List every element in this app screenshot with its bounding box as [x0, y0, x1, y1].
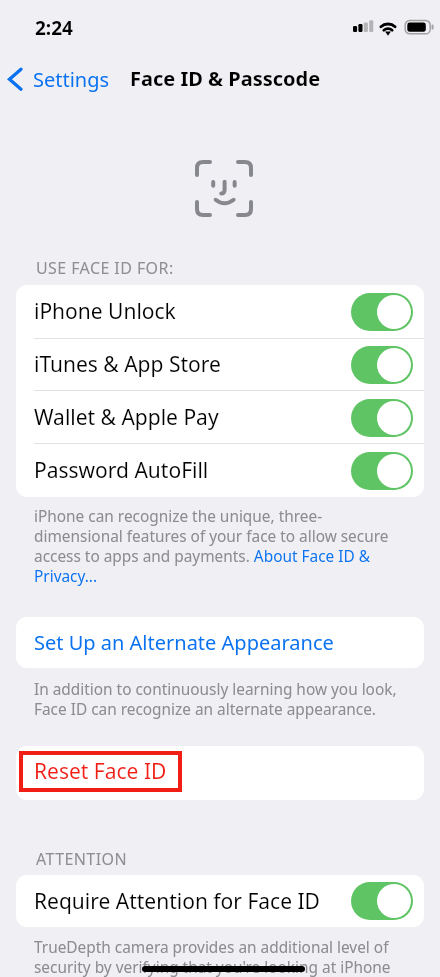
staticText: TrueDepth camera provides an additional …: [34, 938, 408, 977]
button[interactable]: Toggle on: [351, 399, 413, 437]
staticText: ATTENTION: [36, 848, 128, 870]
staticText: In addition to continuously learning how…: [34, 680, 408, 720]
button[interactable]: Toggle on: [351, 882, 413, 920]
staticText: iPhone Unlock: [34, 297, 176, 326]
button[interactable]: Wallet & Apple Pay: [16, 391, 424, 444]
button[interactable]: iPhone Unlock: [16, 285, 424, 338]
staticText: Settings: [33, 66, 110, 93]
staticText: Password AutoFill: [34, 456, 209, 485]
staticText: Wallet & Apple Pay: [34, 403, 219, 432]
button[interactable]: Set Up an Alternate Appearance: [16, 617, 424, 668]
button[interactable]: Password AutoFill: [16, 444, 424, 497]
staticText: Face ID & Passcode: [130, 65, 321, 92]
button[interactable]: Require Attention for Face ID: [16, 875, 424, 927]
staticText: 2:24: [35, 15, 73, 41]
button[interactable]: Back to Settings: [2, 62, 114, 96]
button[interactable]: Toggle on: [351, 346, 413, 384]
staticText: USE FACE ID FOR:: [36, 257, 174, 279]
button[interactable]: Toggle on: [351, 293, 413, 331]
staticText: iPhone can recognize the unique, three-d…: [34, 507, 408, 587]
button[interactable]: Reset Face ID: [16, 746, 424, 800]
button[interactable]: Toggle on: [351, 452, 413, 490]
staticText: iTunes & App Store: [34, 350, 221, 379]
button[interactable]: iTunes & App Store: [16, 338, 424, 391]
staticText: Set Up an Alternate Appearance: [34, 629, 334, 656]
staticText: Require Attention for Face ID: [34, 887, 320, 916]
staticText: Reset Face ID: [34, 757, 167, 786]
